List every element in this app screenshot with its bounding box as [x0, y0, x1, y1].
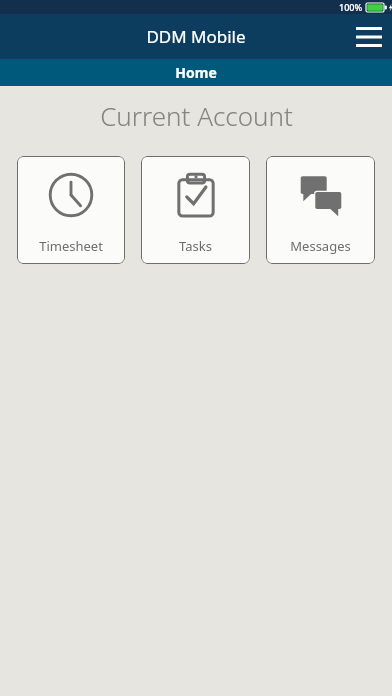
- staticText: Tasks: [179, 237, 212, 255]
- staticText: Messages: [290, 237, 351, 255]
- button[interactable]: Timesheet: [17, 156, 125, 264]
- button[interactable]: Open navigation menu: [346, 14, 392, 59]
- button[interactable]: Home: [0, 59, 392, 86]
- staticText: 100%: [339, 1, 363, 13]
- staticText: DDM Mobile: [146, 25, 246, 48]
- staticText: Current Account: [100, 98, 293, 133]
- staticText: Home: [175, 63, 217, 82]
- button[interactable]: Tasks: [141, 156, 250, 264]
- button[interactable]: Messages: [266, 156, 375, 264]
- staticText: Timesheet: [39, 237, 103, 255]
